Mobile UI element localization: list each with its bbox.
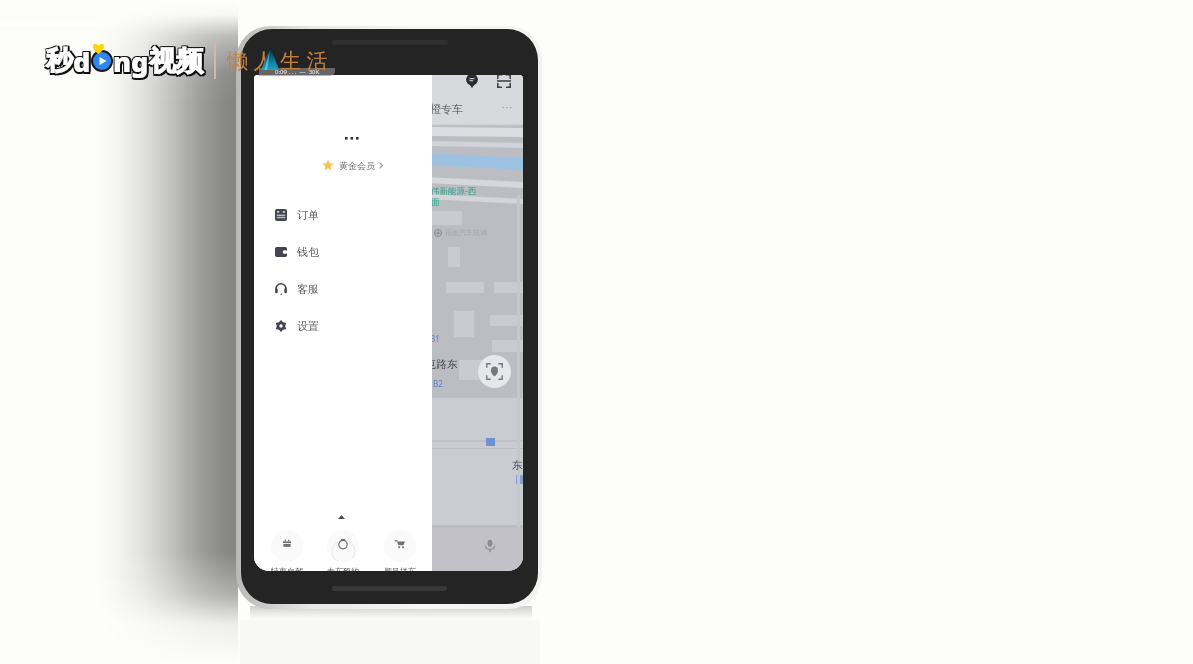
staticText: ng bbox=[115, 42, 151, 78]
button[interactable]: 钱包 bbox=[254, 233, 432, 270]
staticText: 秒 bbox=[48, 46, 75, 80]
staticText: d bbox=[75, 43, 93, 79]
staticText: 福盈汽车玻璃 bbox=[445, 228, 487, 237]
staticText: 伟新能源-西 面 bbox=[431, 185, 477, 208]
staticText: • • • bbox=[502, 104, 512, 112]
staticText: 秒 bbox=[45, 46, 72, 80]
staticText: d bbox=[72, 45, 90, 81]
button[interactable]: Voice search bbox=[480, 536, 500, 556]
staticText: 秒 bbox=[48, 43, 75, 77]
staticText: ng bbox=[113, 42, 149, 78]
button[interactable]: 黄金会员 bbox=[319, 157, 386, 173]
staticText: 视频 bbox=[148, 43, 202, 77]
staticText: ng bbox=[113, 43, 149, 79]
staticText: 顺风拼车 bbox=[384, 566, 416, 571]
staticText: ng bbox=[115, 43, 151, 79]
button[interactable]: 橙专车 bbox=[424, 99, 476, 119]
staticText: 秒 bbox=[46, 46, 73, 80]
staticText: d bbox=[75, 45, 93, 81]
staticText: 秒 bbox=[45, 43, 72, 77]
staticText: 特惠自驾 bbox=[271, 566, 303, 571]
staticText: 黄金会员 bbox=[339, 160, 375, 171]
staticText: 视频 bbox=[148, 44, 202, 78]
staticText: 懒 人 生 活 bbox=[227, 46, 328, 75]
staticText: ng bbox=[113, 45, 149, 81]
staticText: 专车预约 bbox=[327, 566, 359, 571]
staticText: 秒 bbox=[45, 44, 72, 78]
staticText: d bbox=[72, 43, 90, 79]
button[interactable]: My location bbox=[478, 355, 511, 388]
staticText: 客服 bbox=[297, 282, 319, 296]
staticText: 视频 bbox=[151, 43, 205, 77]
staticText: ng bbox=[112, 45, 148, 81]
button[interactable]: 专车预约 bbox=[325, 530, 360, 571]
staticText: B2 bbox=[433, 378, 443, 389]
staticText: d bbox=[75, 42, 93, 78]
staticText: 0:09 . . . — 30K bbox=[275, 68, 320, 76]
button[interactable]: Expand panel bbox=[330, 508, 353, 526]
button[interactable]: 客服 bbox=[254, 270, 432, 307]
staticText: ng bbox=[112, 42, 148, 78]
staticText: 设置 bbox=[297, 319, 319, 333]
button[interactable]: 顺风拼车 bbox=[382, 530, 417, 571]
button[interactable]: More options bbox=[496, 99, 518, 117]
staticText: 橙专车 bbox=[430, 102, 463, 116]
staticText: 秒 bbox=[48, 44, 75, 78]
button[interactable]: Scan bbox=[492, 75, 515, 92]
staticText: d bbox=[73, 45, 91, 81]
staticText: B1 bbox=[430, 333, 440, 344]
staticText: 屯路东 bbox=[425, 357, 458, 371]
staticText: 秒 bbox=[46, 44, 73, 78]
staticText: 视频 bbox=[148, 46, 202, 80]
staticText: 订单 bbox=[297, 208, 319, 222]
staticText: 东 bbox=[512, 458, 523, 472]
staticText: 视频 bbox=[151, 44, 205, 78]
staticText: d bbox=[73, 43, 91, 79]
button[interactable]: 设置 bbox=[254, 307, 432, 344]
staticText: ng bbox=[115, 45, 151, 81]
staticText: 视频 bbox=[149, 43, 203, 77]
button[interactable]: 订单 bbox=[254, 196, 432, 233]
staticText: d bbox=[72, 42, 90, 78]
staticText: 视频 bbox=[151, 46, 205, 80]
staticText: ng bbox=[112, 43, 148, 79]
staticText: 视频 bbox=[149, 44, 203, 78]
button[interactable]: Location pin bbox=[460, 75, 483, 92]
staticText: d bbox=[73, 42, 91, 78]
staticText: 秒 bbox=[46, 43, 73, 77]
button[interactable]: 特惠自驾 bbox=[269, 530, 304, 571]
staticText: 钱包 bbox=[297, 245, 319, 259]
staticText: 视频 bbox=[149, 46, 203, 80]
